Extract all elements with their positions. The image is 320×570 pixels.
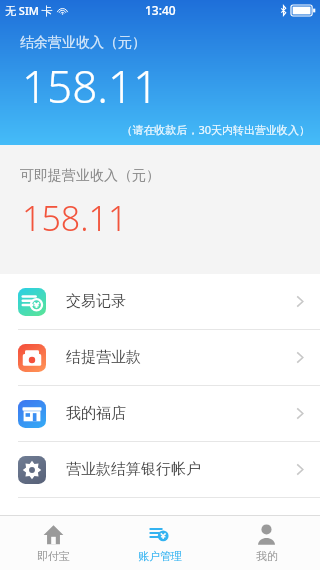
staticText: 无 SIM 卡 <box>5 3 53 18</box>
staticText: 158.11 <box>22 195 128 241</box>
staticText: 我的 <box>256 549 278 563</box>
button[interactable]: 结提营业款 <box>0 330 320 385</box>
button[interactable]: 营业款结算银行帐户 <box>0 442 320 497</box>
staticText: 可即提营业收入（元） <box>20 167 160 185</box>
button[interactable]: 即付宝 <box>0 516 106 570</box>
staticText: 13:40 <box>145 2 176 18</box>
staticText: （请在收款后，30天内转出营业收入） <box>0 122 310 137</box>
button[interactable]: 交易记录 <box>0 274 320 329</box>
staticText: 营业款结算银行帐户 <box>66 460 201 479</box>
staticText: 我的福店 <box>66 404 126 423</box>
staticText: 结余营业收入（元） <box>20 34 146 52</box>
button[interactable]: 我的福店 <box>0 386 320 441</box>
button[interactable]: 账户管理 <box>106 516 213 570</box>
staticText: 结提营业款 <box>66 348 141 367</box>
staticText: 即付宝 <box>37 549 70 563</box>
staticText: 158.11 <box>22 56 159 116</box>
staticText: 账户管理 <box>138 549 182 563</box>
button[interactable]: 我的 <box>213 516 320 570</box>
staticText: 交易记录 <box>66 292 126 311</box>
